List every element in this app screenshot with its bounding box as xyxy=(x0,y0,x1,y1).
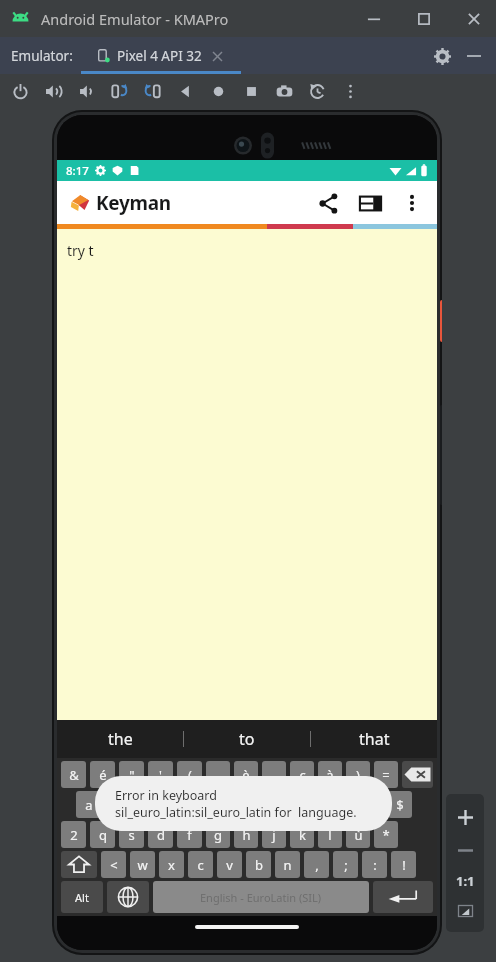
button[interactable]: Close xyxy=(462,7,486,31)
button[interactable]: ) xyxy=(346,761,370,788)
button[interactable]: è xyxy=(234,761,258,788)
button[interactable]: Backspace xyxy=(402,761,433,788)
button[interactable]: Zoom in xyxy=(448,800,482,834)
button[interactable]: * xyxy=(374,821,398,848)
button[interactable]: d xyxy=(148,821,173,848)
button[interactable]: q xyxy=(90,821,115,848)
button[interactable]: $ xyxy=(388,791,412,818)
button[interactable]: " xyxy=(119,761,144,788)
button[interactable]: f xyxy=(177,821,202,848)
staticText: ) xyxy=(356,766,360,784)
button[interactable]: ç xyxy=(290,761,314,788)
staticText: g xyxy=(214,826,222,844)
button[interactable]: _ xyxy=(262,761,286,788)
button[interactable]: More options xyxy=(391,182,433,224)
button[interactable]: i xyxy=(276,791,300,818)
button[interactable]: , xyxy=(304,851,329,878)
button[interactable]: ( xyxy=(177,761,202,788)
button[interactable]: Screenshot xyxy=(268,75,301,108)
button[interactable]: - xyxy=(206,761,230,788)
button[interactable]: e xyxy=(134,791,159,818)
button[interactable]: v xyxy=(217,851,242,878)
button[interactable]: Power xyxy=(4,75,37,108)
staticText: o xyxy=(312,796,320,814)
button[interactable]: o xyxy=(304,791,328,818)
staticText: x xyxy=(168,856,175,874)
staticText: p xyxy=(340,796,348,814)
button[interactable]: Fit to window xyxy=(450,896,480,926)
staticText: Keyman xyxy=(96,190,171,216)
button[interactable]: ù xyxy=(346,821,370,848)
button[interactable]: the xyxy=(57,720,183,758)
button[interactable]: Settings xyxy=(428,42,456,70)
staticText: < xyxy=(110,856,118,874)
button[interactable]: t xyxy=(192,791,216,818)
button[interactable]: Maximize xyxy=(412,7,436,31)
button[interactable]: & xyxy=(61,761,86,788)
button[interactable]: < xyxy=(101,851,126,878)
button[interactable]: Rotate left xyxy=(103,75,136,108)
button[interactable]: b xyxy=(246,851,271,878)
staticText: ù xyxy=(354,826,363,844)
button[interactable]: k xyxy=(290,821,314,848)
button[interactable]: é xyxy=(90,761,115,788)
staticText: , xyxy=(315,856,319,874)
button[interactable]: w xyxy=(130,851,155,878)
button[interactable]: Minimize xyxy=(362,7,386,31)
button[interactable]: Shift xyxy=(61,851,97,878)
button[interactable]: Alt xyxy=(61,881,103,913)
button[interactable]: : xyxy=(362,851,387,878)
staticText: " xyxy=(129,766,135,784)
button[interactable]: ' xyxy=(148,761,173,788)
button[interactable]: s xyxy=(119,821,144,848)
button[interactable]: n xyxy=(275,851,300,878)
button[interactable]: Volume up xyxy=(37,75,70,108)
staticText: * xyxy=(382,826,390,844)
button[interactable]: r xyxy=(163,791,188,818)
button[interactable]: Power button xyxy=(440,300,442,342)
staticText: q xyxy=(99,826,107,844)
button[interactable]: Switch keyboard xyxy=(107,881,149,913)
button[interactable]: ! xyxy=(391,851,416,878)
button[interactable]: Keyboards xyxy=(349,182,391,224)
button[interactable]: 1:1 xyxy=(450,866,480,896)
button[interactable]: History xyxy=(301,75,334,108)
button[interactable]: x xyxy=(159,851,184,878)
button[interactable]: More options xyxy=(334,75,367,108)
button[interactable]: Enter xyxy=(373,881,433,913)
staticText: ' xyxy=(159,766,162,784)
button[interactable]: English - EuroLatin (SIL) xyxy=(153,881,369,913)
button[interactable]: Rotate right xyxy=(136,75,169,108)
button[interactable]: Volume down xyxy=(70,75,103,108)
button[interactable]: Back xyxy=(169,75,202,108)
button[interactable]: that xyxy=(311,720,437,758)
button[interactable]: z xyxy=(105,791,130,818)
button[interactable]: y xyxy=(220,791,244,818)
button[interactable]: a xyxy=(76,791,101,818)
button[interactable]: Minimize panel xyxy=(460,42,488,70)
button[interactable]: 2 xyxy=(61,821,86,848)
button[interactable]: p xyxy=(332,791,356,818)
button[interactable]: Overview xyxy=(235,75,268,108)
button[interactable]: à xyxy=(318,761,342,788)
staticText: é xyxy=(99,766,107,784)
button[interactable]: c xyxy=(188,851,213,878)
button[interactable]: u xyxy=(248,791,272,818)
button[interactable]: l xyxy=(318,821,342,848)
button[interactable]: Home xyxy=(202,75,235,108)
staticText: Android Emulator - KMAPro xyxy=(41,9,229,29)
button[interactable]: j xyxy=(262,821,286,848)
button[interactable]: g xyxy=(206,821,230,848)
button[interactable]: h xyxy=(234,821,258,848)
staticText: c xyxy=(197,856,204,874)
button[interactable]: Share xyxy=(307,182,349,224)
button[interactable]: Zoom out xyxy=(449,834,481,866)
button[interactable]: ; xyxy=(333,851,358,878)
button[interactable]: Pixel 4 API 32 xyxy=(96,37,225,74)
button[interactable]: Close tab xyxy=(209,48,225,64)
button[interactable]: = xyxy=(374,761,398,788)
button[interactable]: to xyxy=(184,720,310,758)
